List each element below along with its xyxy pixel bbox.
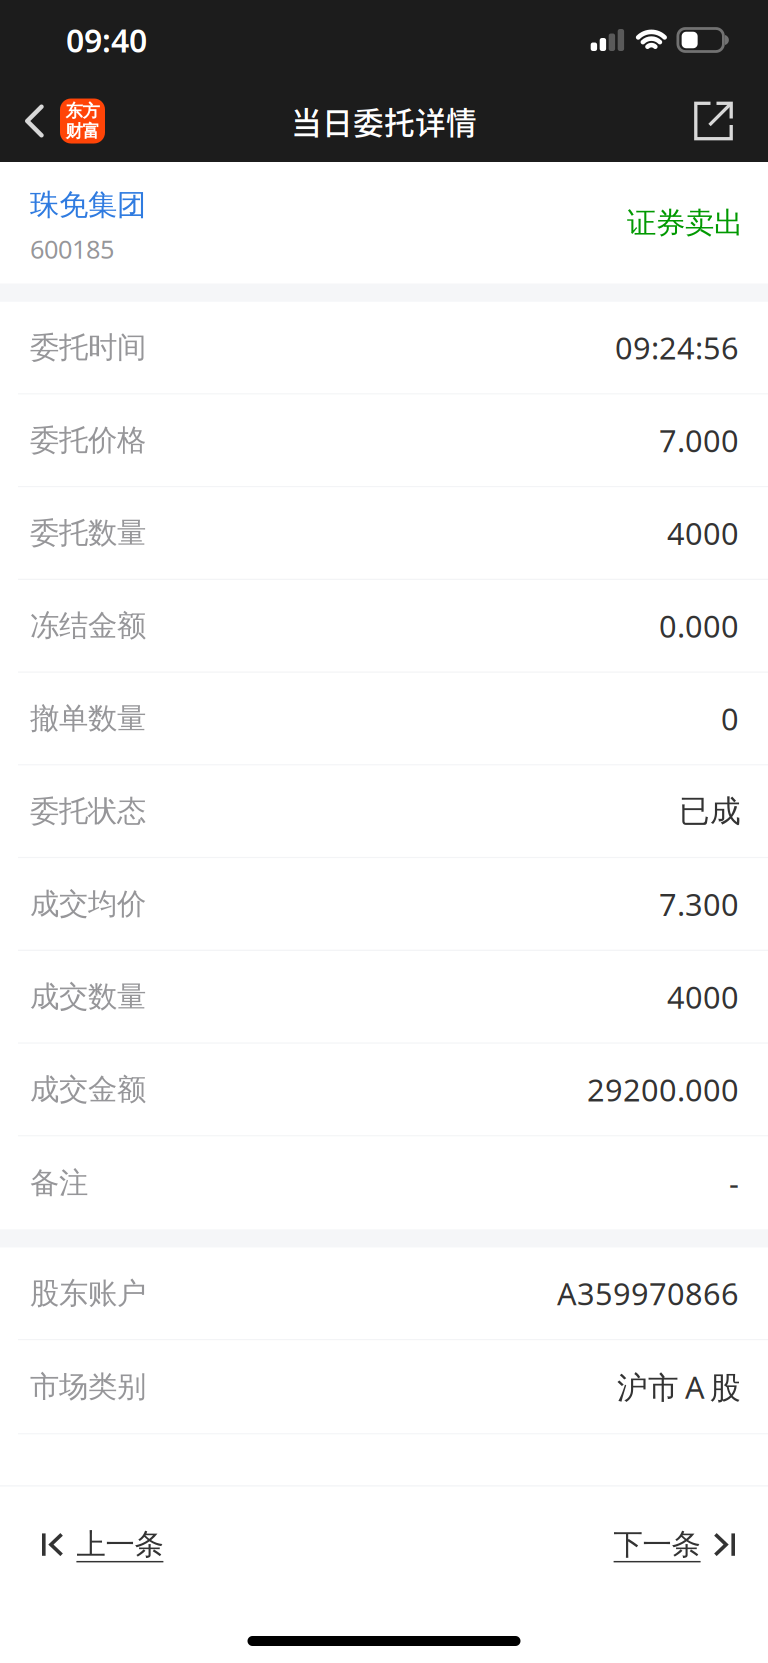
staticText: 成交数量 <box>30 979 146 1015</box>
staticText: 4000 <box>667 976 739 1017</box>
staticText: 4000 <box>667 513 739 553</box>
staticText: 下一条 <box>614 1527 701 1563</box>
button[interactable]: Back <box>0 80 115 162</box>
staticText: 委托状态 <box>30 793 146 829</box>
staticText: 东方 <box>65 100 99 121</box>
staticText: 珠免集团 <box>30 187 146 223</box>
staticText: 撤单数量 <box>30 700 146 736</box>
staticText: 7.300 <box>659 884 739 924</box>
staticText: 市场类别 <box>30 1369 146 1405</box>
button[interactable]: 上一条 <box>0 1487 187 1601</box>
staticText: - <box>729 1163 739 1203</box>
staticText: 0.000 <box>659 605 739 646</box>
button[interactable]: Share <box>678 80 768 162</box>
staticText: 备注 <box>30 1165 88 1201</box>
staticText: 财富 <box>65 120 99 142</box>
staticText: 冻结金额 <box>30 608 146 644</box>
staticText: 29200.000 <box>587 1069 739 1110</box>
staticText: 成交均价 <box>30 886 146 922</box>
staticText: A359970866 <box>557 1273 739 1314</box>
button[interactable]: 下一条 <box>590 1487 768 1601</box>
staticText: 成交金额 <box>30 1071 146 1107</box>
staticText: 股东账户 <box>30 1275 146 1311</box>
staticText: 7.000 <box>659 420 739 461</box>
staticText: 委托价格 <box>30 422 146 458</box>
staticText: 09:40 <box>66 19 147 61</box>
staticText: 上一条 <box>76 1527 163 1563</box>
staticText: 当日委托详情 <box>291 99 477 143</box>
staticText: 600185 <box>30 232 114 266</box>
staticText: 证券卖出 <box>627 205 743 241</box>
staticText: 已成 <box>679 792 741 830</box>
staticText: 09:24:56 <box>615 327 739 368</box>
staticText: 委托时间 <box>30 330 146 366</box>
staticText: 0 <box>721 698 739 739</box>
staticText: 沪市 A 股 <box>617 1366 741 1407</box>
staticText: 委托数量 <box>30 515 146 551</box>
